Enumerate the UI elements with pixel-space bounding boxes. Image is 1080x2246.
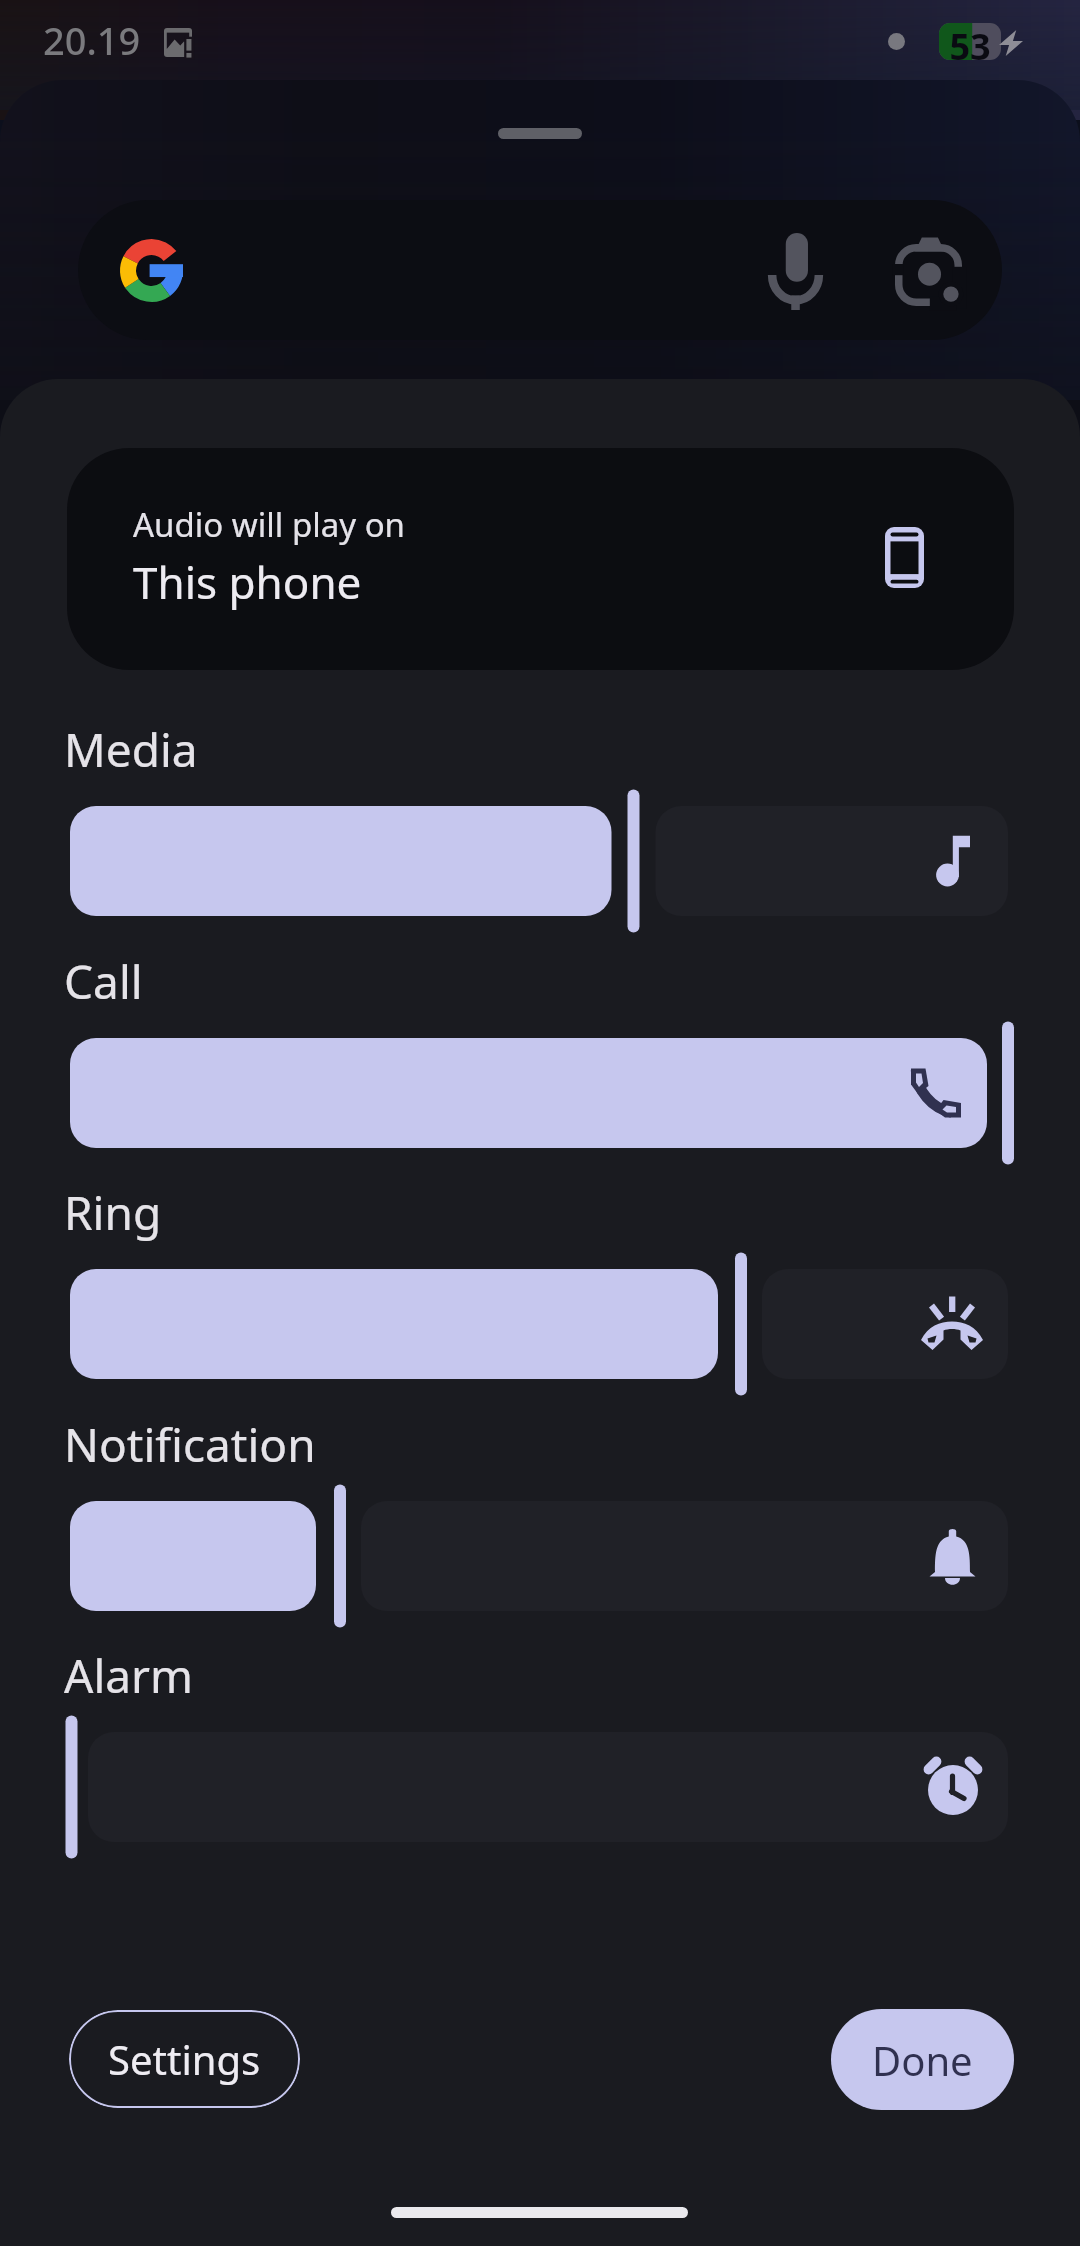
button[interactable]: Call volume [70,1038,1008,1148]
other: This phone [885,527,924,588]
staticText: Done [872,2033,973,2087]
button[interactable]: Google Lens [895,236,962,306]
staticText: Ring [64,1181,162,1244]
button[interactable]: Audio will play on [67,448,1014,670]
button[interactable]: Ring volume [70,1269,1008,1379]
staticText: Notification [64,1413,316,1476]
staticText: 20.19 [43,14,141,66]
button[interactable]: Search [78,200,1002,340]
button[interactable]: Media volume [70,806,1008,916]
staticText: 53 [939,22,1001,71]
button[interactable]: Done [831,2009,1014,2110]
staticText: Audio will play on [133,502,405,547]
staticText: This phone [133,552,362,612]
button[interactable]: Notification volume [70,1501,1008,1611]
staticText: Alarm [64,1644,194,1707]
button[interactable]: Alarm volume [70,1732,1008,1842]
button[interactable]: Voice search [768,233,823,310]
button[interactable]: Settings [69,2010,300,2108]
staticText: Settings [108,2032,261,2086]
staticText: Call [64,950,143,1013]
staticText: Media [64,718,198,781]
